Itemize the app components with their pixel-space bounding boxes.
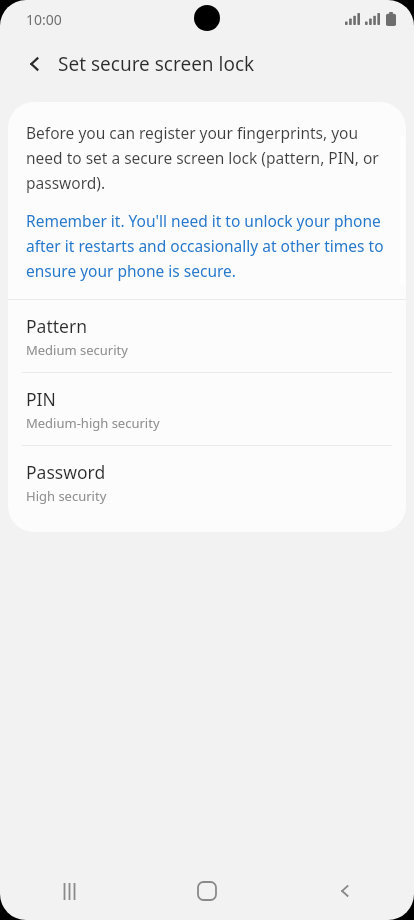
staticText: Before you can register your fingerprint… <box>26 120 388 195</box>
staticText: Set secure screen lock <box>58 51 255 77</box>
button[interactable]: Pattern <box>8 300 406 372</box>
staticText: Medium security <box>26 341 128 359</box>
button[interactable]: Back <box>276 862 414 920</box>
staticText: High security <box>26 487 107 505</box>
button[interactable]: Recents <box>0 862 138 920</box>
button[interactable]: Password <box>8 446 406 518</box>
staticText: Password <box>26 460 106 484</box>
staticText: Remember it. You'll need it to unlock yo… <box>26 208 388 283</box>
button[interactable]: Home <box>138 862 276 920</box>
staticText: 10:00 <box>26 10 62 29</box>
button[interactable]: Back <box>14 43 56 85</box>
button[interactable]: PIN <box>8 373 406 445</box>
staticText: PIN <box>26 387 56 411</box>
staticText: Medium-high security <box>26 414 160 432</box>
staticText: Pattern <box>26 314 87 338</box>
